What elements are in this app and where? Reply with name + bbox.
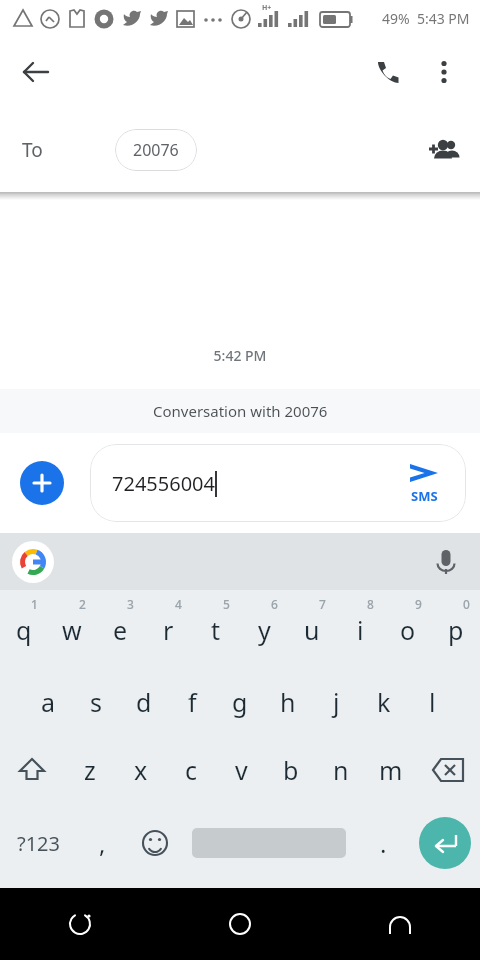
button[interactable]: Back bbox=[320, 888, 480, 960]
button[interactable]: Backspace bbox=[416, 734, 480, 806]
staticText: j bbox=[333, 685, 340, 719]
button[interactable]: o bbox=[384, 590, 432, 662]
staticText: g bbox=[232, 685, 248, 719]
staticText: z bbox=[84, 753, 96, 787]
button[interactable]: s bbox=[72, 662, 120, 734]
button[interactable]: Call bbox=[364, 48, 412, 96]
staticText: Conversation with 20076 bbox=[153, 401, 328, 421]
staticText: 4 bbox=[175, 596, 182, 612]
button[interactable]: Back bbox=[12, 48, 60, 96]
staticText: q bbox=[16, 613, 32, 647]
staticText: c bbox=[185, 753, 198, 787]
staticText: 20076 bbox=[133, 139, 179, 161]
button[interactable]: p bbox=[432, 590, 480, 662]
button[interactable]: v bbox=[216, 734, 266, 806]
staticText: h bbox=[280, 685, 296, 719]
staticText: SMS bbox=[411, 487, 438, 505]
staticText: , bbox=[99, 827, 106, 860]
button[interactable]: m bbox=[366, 734, 416, 806]
staticText: a bbox=[41, 685, 56, 719]
staticText: 49% 5:43 PM bbox=[382, 9, 470, 28]
button[interactable]: Home bbox=[160, 888, 320, 960]
button[interactable]: f bbox=[168, 662, 216, 734]
staticText: 5 bbox=[223, 596, 230, 612]
staticText: To bbox=[22, 137, 43, 163]
staticText: w bbox=[62, 613, 82, 647]
staticText: k bbox=[377, 685, 391, 719]
button[interactable]: i bbox=[336, 590, 384, 662]
button[interactable]: Recents bbox=[0, 888, 160, 960]
staticText: p bbox=[448, 613, 464, 647]
button[interactable]: r bbox=[144, 590, 192, 662]
staticText: d bbox=[136, 685, 152, 719]
button[interactable]: g bbox=[216, 662, 264, 734]
button[interactable]: Add attachment bbox=[20, 461, 64, 505]
button[interactable]: Enter bbox=[419, 817, 471, 869]
staticText: 2 bbox=[79, 596, 86, 612]
button[interactable]: ?123 bbox=[0, 806, 76, 880]
button[interactable]: a bbox=[24, 662, 72, 734]
staticText: i bbox=[357, 613, 364, 647]
staticText: 8 bbox=[367, 596, 374, 612]
button[interactable]: 20076 bbox=[115, 129, 197, 171]
staticText: 3 bbox=[127, 596, 134, 612]
staticText: f bbox=[188, 685, 197, 719]
staticText: x bbox=[134, 753, 148, 787]
button[interactable]: e bbox=[96, 590, 144, 662]
button[interactable]: Google search bbox=[12, 541, 54, 583]
button[interactable]: Emoji bbox=[128, 806, 182, 880]
staticText: H+ bbox=[262, 3, 272, 13]
button[interactable]: t bbox=[192, 590, 240, 662]
button[interactable]: h bbox=[264, 662, 312, 734]
button[interactable]: Voice input bbox=[426, 542, 466, 582]
staticText: b bbox=[283, 753, 299, 787]
button[interactable]: d bbox=[120, 662, 168, 734]
staticText: 724556004 bbox=[112, 470, 215, 497]
staticText: t bbox=[211, 613, 221, 647]
staticText: 7 bbox=[319, 596, 326, 612]
button[interactable]: Send SMS bbox=[382, 444, 466, 522]
button[interactable]: z bbox=[64, 734, 115, 806]
staticText: m bbox=[379, 753, 403, 787]
button[interactable]: Shift bbox=[0, 734, 64, 806]
button[interactable]: j bbox=[312, 662, 360, 734]
staticText: r bbox=[163, 613, 174, 647]
button[interactable]: . bbox=[356, 806, 410, 880]
staticText: 0 bbox=[463, 596, 470, 612]
button[interactable]: q bbox=[0, 590, 48, 662]
button[interactable]: b bbox=[266, 734, 316, 806]
button[interactable]: k bbox=[360, 662, 408, 734]
staticText: 9 bbox=[415, 596, 422, 612]
button[interactable]: l bbox=[408, 662, 456, 734]
staticText: 6 bbox=[271, 596, 278, 612]
staticText: u bbox=[304, 613, 320, 647]
staticText: s bbox=[90, 685, 102, 719]
button[interactable]: n bbox=[316, 734, 366, 806]
staticText: l bbox=[429, 685, 436, 719]
button[interactable]: 724556004 bbox=[90, 444, 466, 522]
button[interactable]: w bbox=[48, 590, 96, 662]
button[interactable]: y bbox=[240, 590, 288, 662]
staticText: n bbox=[333, 753, 349, 787]
staticText: y bbox=[258, 613, 271, 647]
staticText: 5:42 PM bbox=[0, 346, 480, 365]
staticText: o bbox=[400, 613, 416, 647]
staticText: . bbox=[380, 827, 387, 860]
button[interactable]: , bbox=[76, 806, 128, 880]
button[interactable]: c bbox=[166, 734, 216, 806]
staticText: v bbox=[235, 753, 248, 787]
button[interactable]: More options bbox=[420, 48, 468, 96]
staticText: 1 bbox=[31, 596, 38, 612]
staticText: ?123 bbox=[17, 830, 60, 857]
button[interactable]: u bbox=[288, 590, 336, 662]
staticText: e bbox=[113, 613, 128, 647]
button[interactable]: x bbox=[115, 734, 166, 806]
button[interactable]: Add recipient bbox=[420, 126, 468, 174]
